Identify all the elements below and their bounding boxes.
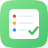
button[interactable]: Reminders — [0, 0, 48, 48]
